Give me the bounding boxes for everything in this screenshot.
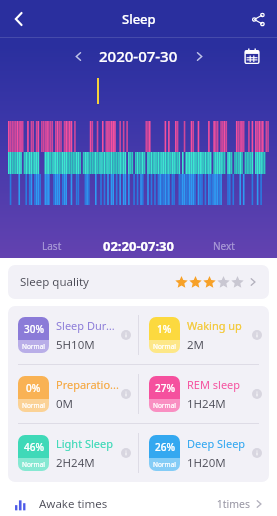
staticText: Normal bbox=[22, 342, 45, 351]
button[interactable]: Info Preparatio... bbox=[120, 388, 132, 400]
staticText: 5H10M bbox=[56, 337, 95, 353]
button[interactable]: Last bbox=[42, 239, 62, 253]
staticText: 2H24M bbox=[56, 455, 95, 471]
staticText: Normal bbox=[22, 401, 45, 410]
button[interactable]: Next bbox=[213, 239, 235, 253]
staticText: Sleep bbox=[122, 10, 156, 28]
button[interactable]: Info Light Sleep bbox=[120, 447, 132, 459]
button[interactable]: 46% bbox=[8, 424, 138, 482]
staticText: 26% bbox=[155, 440, 175, 454]
staticText: 0% bbox=[26, 381, 41, 395]
button[interactable]: Awake times bbox=[8, 492, 269, 516]
staticText: 1H20M bbox=[187, 455, 226, 471]
button[interactable]: Pick date bbox=[239, 43, 265, 69]
button[interactable]: Info REM sleep bbox=[251, 388, 263, 400]
staticText: Normal bbox=[22, 460, 45, 469]
button[interactable]: 30% bbox=[8, 306, 138, 364]
staticText: Light Sleep bbox=[56, 436, 114, 451]
staticText: 46% bbox=[24, 440, 44, 454]
button[interactable]: Info Waking up bbox=[251, 329, 263, 341]
staticText: 2020-07-30 bbox=[99, 46, 178, 66]
button[interactable]: Share bbox=[239, 0, 277, 38]
staticText: Normal bbox=[153, 460, 176, 469]
staticText: 27% bbox=[155, 381, 175, 395]
button[interactable]: 0% bbox=[8, 365, 138, 423]
staticText: Normal bbox=[153, 401, 176, 410]
staticText: 1% bbox=[157, 322, 172, 336]
staticText: Preparatio... bbox=[56, 377, 119, 392]
button[interactable]: Previous day bbox=[67, 45, 89, 67]
staticText: REM sleep bbox=[187, 377, 241, 392]
staticText: Sleep quality bbox=[20, 274, 89, 290]
staticText: Deep Sleep bbox=[187, 436, 246, 451]
button[interactable]: 1% bbox=[139, 306, 269, 364]
staticText: Normal bbox=[153, 342, 176, 351]
button[interactable]: Back bbox=[0, 0, 38, 38]
staticText: 1times bbox=[216, 497, 250, 511]
staticText: Waking up bbox=[187, 318, 242, 333]
button[interactable]: Info Sleep Dura... bbox=[120, 329, 132, 341]
staticText: 30% bbox=[24, 322, 44, 336]
staticText: Sleep Dura... bbox=[56, 318, 120, 333]
button[interactable]: Next day bbox=[188, 45, 210, 67]
staticText: 1H24M bbox=[187, 396, 226, 412]
button[interactable]: 27% bbox=[139, 365, 269, 423]
button[interactable]: Info Deep Sleep bbox=[251, 447, 263, 459]
staticText: Awake times bbox=[39, 496, 108, 512]
staticText: 02:20-07:30 bbox=[103, 237, 174, 255]
staticText: 2M bbox=[187, 337, 205, 353]
staticText: 0M bbox=[56, 396, 74, 412]
button[interactable]: 26% bbox=[139, 424, 269, 482]
button[interactable]: Sleep quality bbox=[8, 265, 269, 299]
